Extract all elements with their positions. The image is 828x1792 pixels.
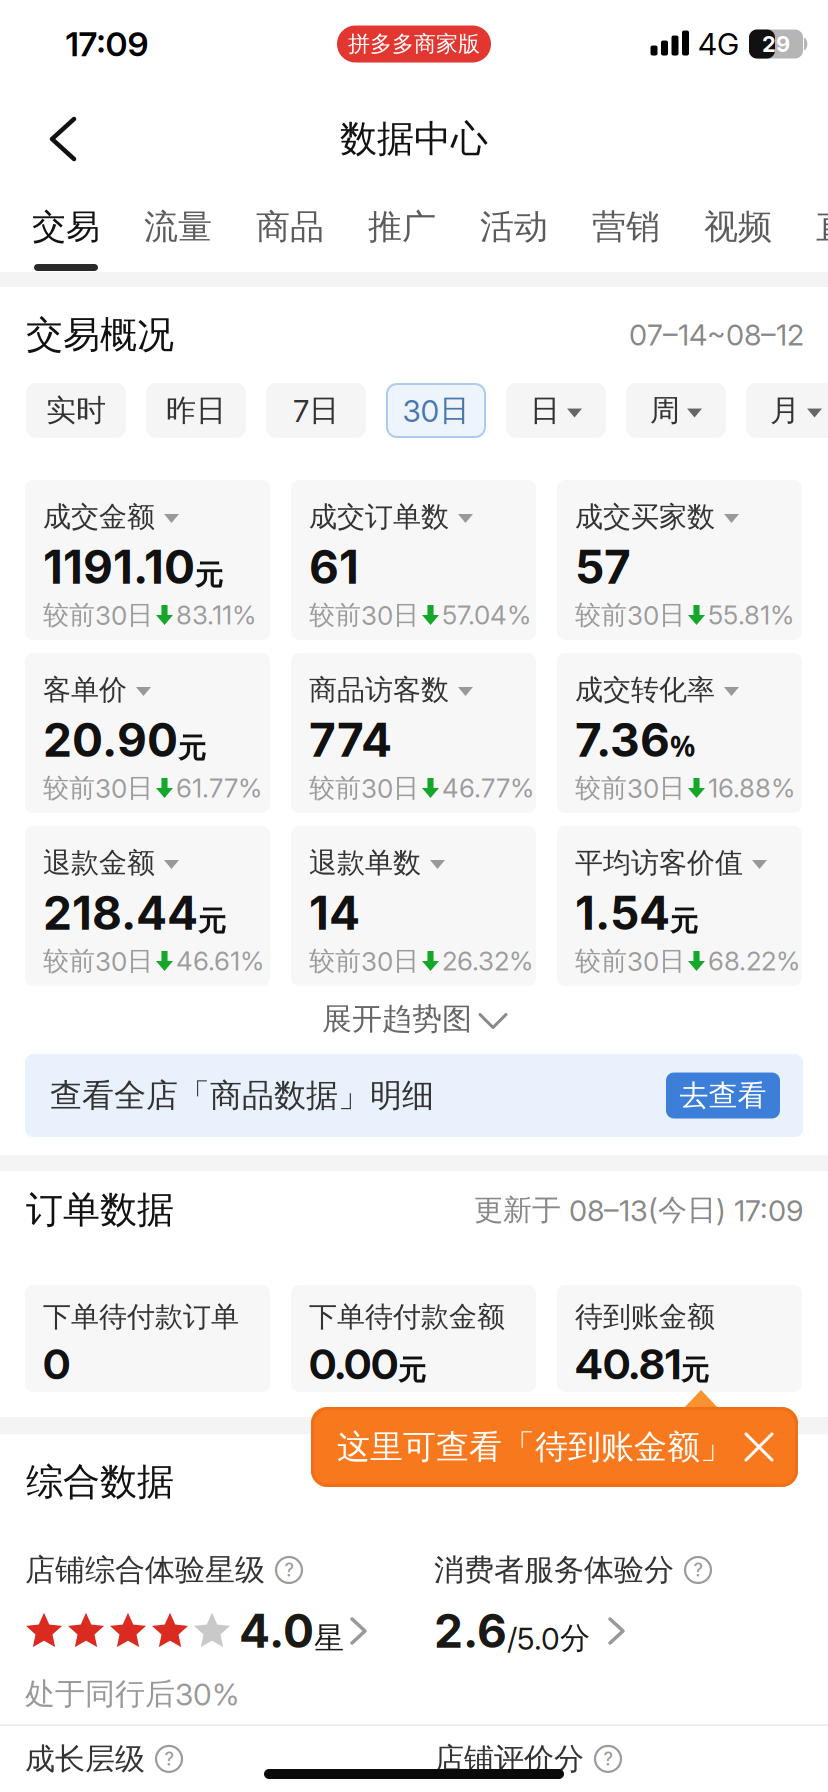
button[interactable]: 关闭提示 (311, 1407, 798, 1487)
staticText: 0.00元 (309, 1339, 426, 1389)
button[interactable]: 营销 (592, 190, 660, 271)
staticText: ? (164, 1748, 173, 1770)
button[interactable]: 成交订单数 (291, 480, 536, 640)
staticText: 1191.10元 (43, 540, 223, 594)
staticText: 昨日 (166, 392, 226, 429)
staticText: 实时 (46, 392, 106, 429)
staticText: 平均访客价值 (575, 845, 743, 881)
button[interactable]: 返回 (0, 104, 104, 174)
staticText: 处于同行后30% (25, 1675, 239, 1713)
staticText: 2.6/5.0分 (434, 1604, 590, 1658)
staticText: 这里可查看「待到账金额」 (337, 1426, 733, 1468)
staticText: 日 (530, 392, 560, 429)
button[interactable]: 说明 (594, 1744, 622, 1773)
staticText: 商品访客数 (309, 672, 449, 708)
button[interactable]: 直播 (816, 190, 828, 271)
button[interactable]: 日 (506, 383, 606, 438)
button[interactable]: 30日 (386, 383, 486, 438)
staticText: 综合数据 (26, 1459, 174, 1505)
staticText: 17:09 (65, 23, 148, 64)
button[interactable]: 退款单数 (291, 826, 536, 986)
button[interactable]: 客单价 (25, 653, 270, 813)
staticText: 成交订单数 (309, 499, 449, 535)
button[interactable]: 周 (626, 383, 726, 438)
staticText: 退款单数 (309, 845, 421, 881)
button[interactable]: 视频 (704, 190, 772, 271)
button[interactable]: 平均访客价值 (557, 826, 802, 986)
button[interactable]: 待到账金额 (557, 1285, 802, 1392)
button[interactable]: 成交买家数 (557, 480, 802, 640)
staticText: 商品 (256, 206, 324, 248)
button[interactable]: 2.6/5.0分 (434, 1600, 623, 1662)
staticText: 83.11% (176, 599, 256, 631)
button[interactable]: 昨日 (146, 383, 246, 438)
button[interactable]: 月 (746, 383, 828, 438)
staticText: 0 (43, 1339, 70, 1389)
staticText: 订单数据 (26, 1187, 174, 1233)
staticText: 推广 (368, 206, 436, 248)
staticText: 较前30日 (43, 945, 153, 977)
staticText: 较前30日 (575, 772, 685, 804)
button[interactable]: 说明 (684, 1555, 712, 1584)
staticText: 较前30日 (43, 772, 153, 804)
staticText: ? (603, 1748, 612, 1770)
staticText: 成交金额 (43, 499, 155, 535)
staticText: 20.90元 (43, 713, 206, 767)
staticText: 消费者服务体验分 (434, 1551, 674, 1589)
staticText: 成长层级 (25, 1740, 145, 1778)
button[interactable]: 实时 (26, 383, 126, 438)
button[interactable]: 商品访客数 (291, 653, 536, 813)
staticText: ? (693, 1559, 702, 1581)
button[interactable]: 流量 (144, 190, 212, 271)
button[interactable]: 展开趋势图 (0, 986, 828, 1052)
button[interactable]: 商品 (256, 190, 324, 271)
staticText: 成交转化率 (575, 672, 715, 708)
button[interactable]: 成交金额 (25, 480, 270, 640)
staticText: 店铺综合体验星级 (25, 1551, 265, 1589)
staticText: 57.04% (442, 599, 531, 631)
staticText: 46.61% (176, 945, 264, 977)
staticText: 07–14~08–12 (629, 317, 804, 353)
staticText: 4.0星 (239, 1604, 344, 1658)
button[interactable]: 交易 (32, 190, 100, 271)
staticText: 周 (650, 392, 680, 429)
button[interactable]: 下单待付款金额 (291, 1285, 536, 1392)
button[interactable]: 4.0星 (25, 1600, 365, 1662)
staticText: 营销 (592, 206, 660, 248)
button[interactable]: 成交转化率 (557, 653, 802, 813)
button[interactable]: 查看全店「商品数据」明细 (25, 1054, 803, 1137)
button[interactable]: 7日 (266, 383, 366, 438)
staticText: 直播 (816, 206, 828, 248)
staticText: 更新于 08–13(今日) 17:09 (474, 1192, 804, 1228)
staticText: 1.54元 (575, 886, 698, 940)
button[interactable]: 下单待付款订单 (25, 1285, 270, 1392)
button[interactable]: 活动 (480, 190, 548, 271)
button[interactable]: 说明 (155, 1744, 183, 1773)
staticText: 26.32% (442, 945, 533, 977)
staticText: 7日 (293, 392, 339, 429)
staticText: 交易 (32, 206, 100, 248)
staticText: 视频 (704, 206, 772, 248)
button[interactable]: 拼多多商家版 (337, 25, 491, 62)
staticText: 774 (309, 713, 392, 767)
staticText: 55.81% (708, 599, 794, 631)
staticText: 待到账金额 (575, 1299, 715, 1335)
staticText: 14 (309, 886, 360, 940)
staticText: 交易概况 (26, 312, 174, 358)
staticText: 68.22% (708, 945, 800, 977)
staticText: 较前30日 (309, 599, 419, 631)
button[interactable]: 退款金额 (25, 826, 270, 986)
staticText: 成交买家数 (575, 499, 715, 535)
staticText: 30日 (402, 392, 469, 429)
staticText: 较前30日 (575, 599, 685, 631)
staticText: 查看全店「商品数据」明细 (50, 1075, 434, 1116)
staticText: 4G (698, 26, 739, 62)
staticText: 较前30日 (575, 945, 685, 977)
staticText: 29 (762, 31, 790, 57)
staticText: 流量 (144, 206, 212, 248)
button[interactable]: 推广 (368, 190, 436, 271)
staticText: 218.44元 (43, 886, 226, 940)
staticText: 较前30日 (309, 772, 419, 804)
staticText: 活动 (480, 206, 548, 248)
button[interactable]: 说明 (275, 1555, 303, 1584)
